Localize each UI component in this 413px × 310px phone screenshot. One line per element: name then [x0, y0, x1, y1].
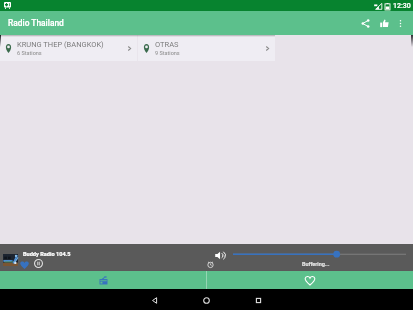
button[interactable]: OTRAS	[138, 35, 275, 61]
staticText: Buddy Radio 104.5	[23, 251, 71, 258]
button[interactable]: Stations	[0, 271, 206, 289]
staticText: Buffering...	[302, 261, 330, 267]
button[interactable]: KRUNG THEP (BANGKOK)	[0, 35, 137, 61]
button[interactable]: Back	[144, 290, 164, 310]
button[interactable]: Home	[196, 290, 216, 310]
button[interactable]: Pause	[32, 257, 45, 270]
staticText: 6 Stations	[17, 50, 42, 56]
button[interactable]: Like	[374, 13, 394, 33]
button[interactable]: Favorites	[206, 271, 413, 289]
button[interactable]: Favorite	[18, 258, 31, 271]
button[interactable]: Share	[355, 13, 375, 33]
staticText: 12:30	[393, 2, 411, 10]
staticText: OTRAS	[155, 40, 179, 49]
button[interactable]: Sleep timer	[205, 259, 216, 270]
button[interactable]: More options	[391, 14, 410, 33]
button[interactable]: Volume	[214, 249, 227, 262]
staticText: KRUNG THEP (BANGKOK)	[17, 40, 104, 49]
staticText: Radio Thailand	[8, 18, 64, 28]
button[interactable]: Recents	[248, 290, 268, 310]
staticText: 9 Stations	[155, 50, 180, 56]
